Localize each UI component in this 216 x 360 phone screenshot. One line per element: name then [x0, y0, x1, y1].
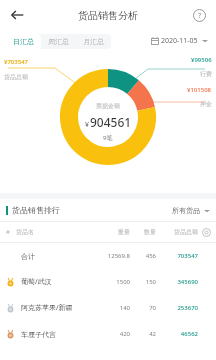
staticText: 70 [136, 304, 156, 312]
button[interactable]: Back [6, 4, 28, 26]
staticText: 140 [104, 304, 130, 312]
staticText: 货品销售分析 [78, 9, 138, 22]
button[interactable]: 2020-11-05 [149, 36, 210, 46]
staticText: 周汇总 [48, 37, 69, 46]
staticText: 12569.8 [104, 252, 130, 260]
staticText: 345690 [164, 278, 198, 286]
staticText: 月汇总 [83, 37, 104, 46]
button[interactable]: Settings [201, 227, 212, 238]
staticText: 所有货品 [172, 206, 200, 215]
staticText: 2020-11-05 [161, 36, 198, 46]
staticText: 150 [136, 278, 156, 286]
staticText: 9笔 [103, 134, 113, 142]
staticText: 42 [136, 330, 156, 338]
staticText: ? [198, 11, 202, 21]
button[interactable]: 葡萄/武汉 [0, 269, 216, 295]
button[interactable]: 所有货品 [172, 206, 210, 215]
staticText: ¥99506 [191, 56, 212, 64]
staticText: 重量 [104, 228, 130, 236]
staticText: 车厘子代言 [21, 330, 56, 339]
button[interactable]: 日汇总 [6, 34, 41, 49]
staticText: ¥101508 [187, 86, 212, 94]
button[interactable]: 车厘子代言 [0, 321, 216, 347]
button[interactable]: 阿克苏苹果/新疆 [0, 295, 216, 321]
staticText: 253670 [164, 304, 198, 312]
button[interactable]: Help [188, 4, 210, 26]
staticText: 葡萄/武汉 [21, 277, 52, 287]
staticText: 货品总额 [164, 228, 198, 236]
button[interactable]: 月汇总 [76, 34, 111, 49]
staticText: 420 [104, 330, 130, 338]
staticText: 票据金额 [96, 102, 120, 110]
staticText: 货品销售排行 [12, 205, 60, 215]
staticText: 数量 [136, 228, 156, 236]
staticText: 1500 [104, 278, 130, 286]
staticText: 押金 [200, 100, 212, 108]
staticText: 行费 [200, 70, 212, 78]
staticText: # [6, 228, 10, 236]
staticText: 904561 [90, 114, 132, 130]
staticText: 货品名 [16, 228, 34, 236]
staticText: 46562 [164, 330, 198, 338]
staticText: 合计 [21, 252, 35, 261]
staticText: ¥ [85, 120, 90, 130]
staticText: ¥703547 [4, 58, 29, 66]
staticText: 日汇总 [13, 37, 34, 46]
staticText: 456 [136, 252, 156, 260]
button[interactable]: 周汇总 [41, 34, 76, 49]
staticText: 货品总额 [4, 73, 28, 81]
staticText: 703547 [164, 252, 198, 260]
staticText: 阿克苏苹果/新疆 [21, 303, 73, 313]
button[interactable]: 合计 [0, 243, 216, 269]
